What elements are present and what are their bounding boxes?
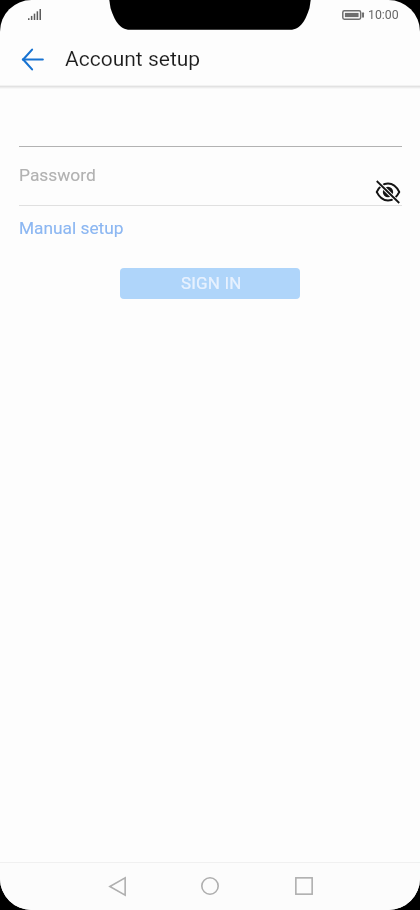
staticText: Password [19,165,96,185]
button[interactable]: Back [10,37,54,81]
button[interactable]: Home [186,862,234,910]
staticText: 10:00 [368,8,399,22]
button[interactable]: Show password [372,176,404,208]
button[interactable]: Recents [280,862,328,910]
staticText: SIGN IN [181,273,242,293]
button[interactable]: SIGN IN [120,268,300,299]
button[interactable]: Manual setup [19,218,124,238]
staticText: Account setup [65,47,201,72]
staticText: Manual setup [19,218,124,238]
button[interactable]: Back [93,862,141,910]
